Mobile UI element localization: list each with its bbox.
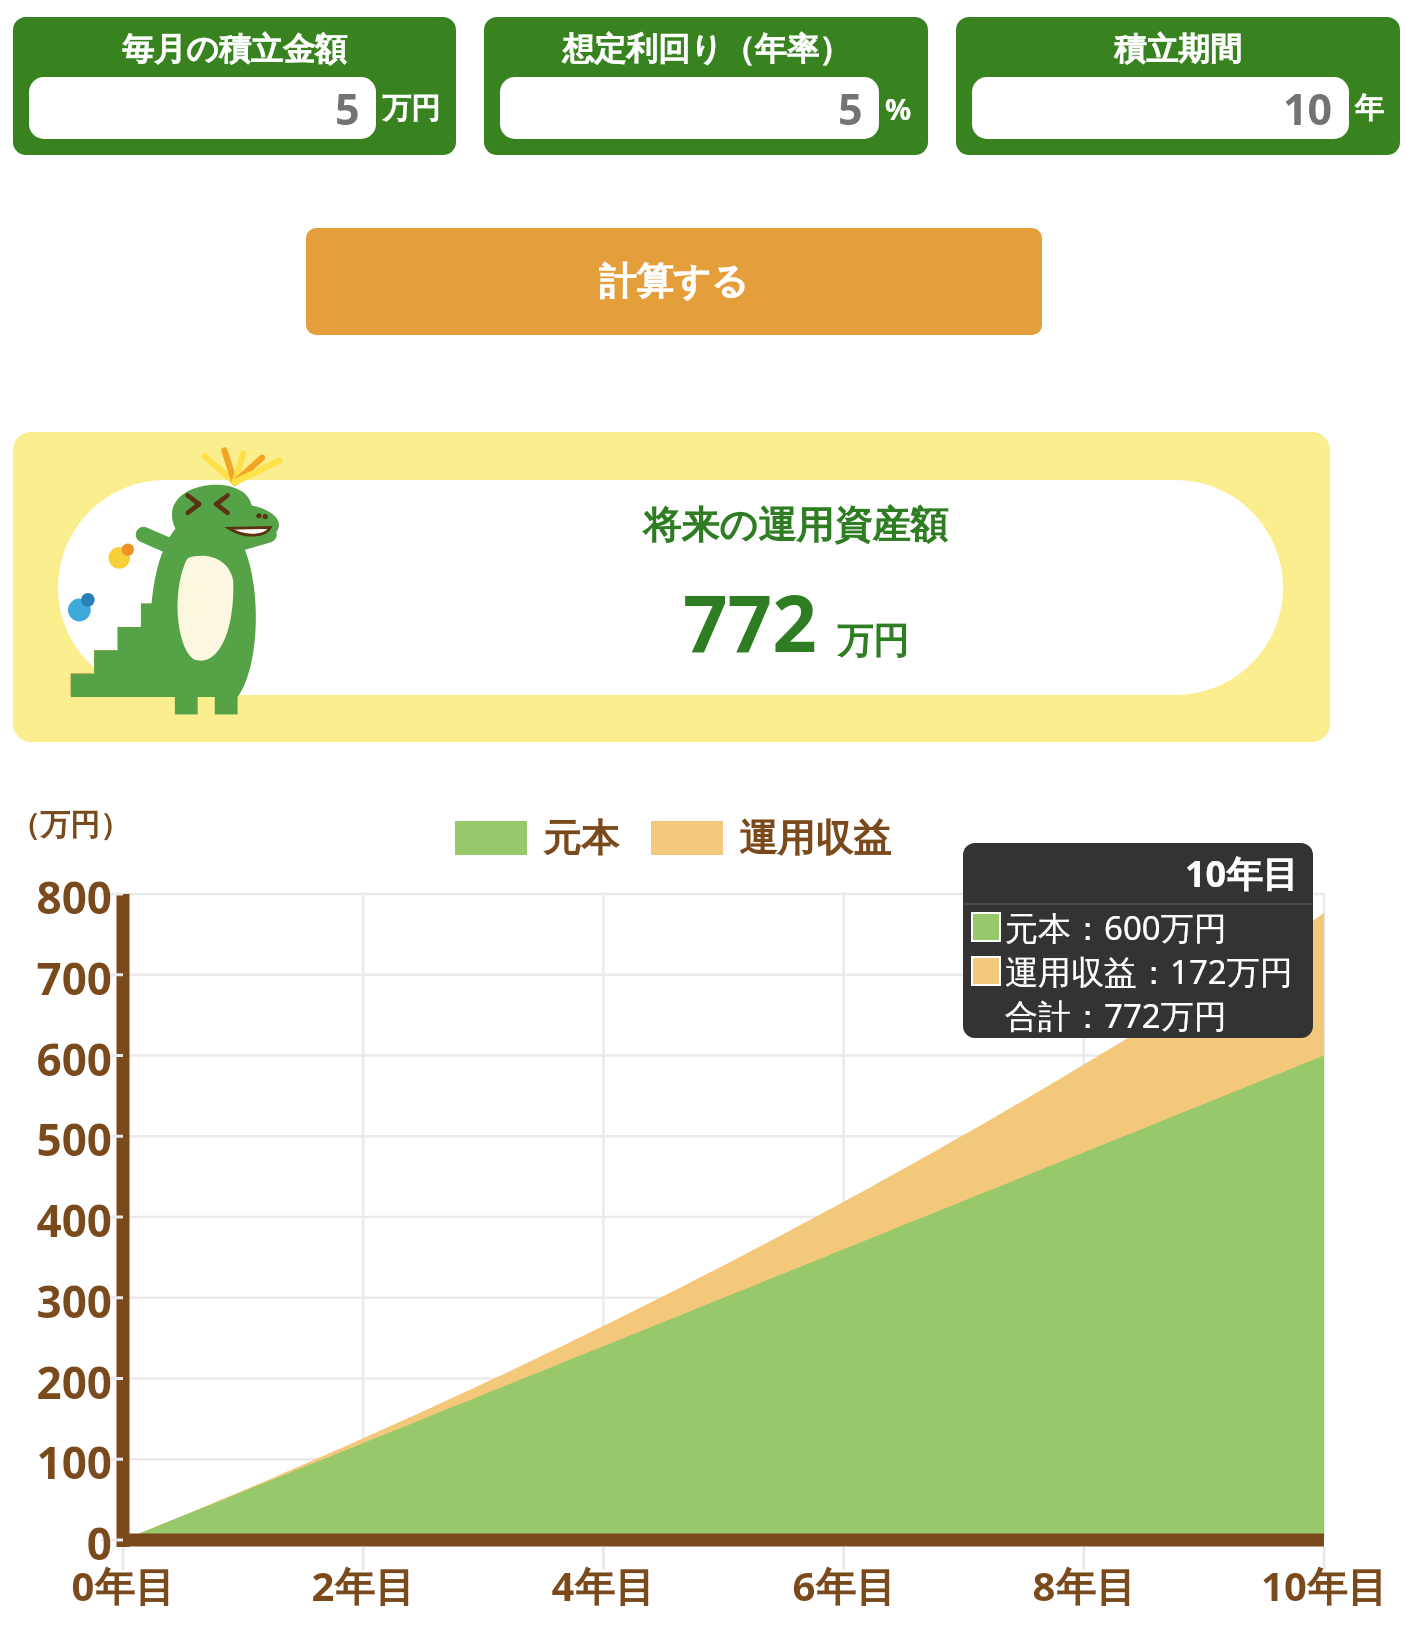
staticText: 500 [0, 1109, 112, 1169]
staticText: 5 [838, 79, 863, 138]
staticText: 積立期間 [1114, 29, 1242, 69]
staticText: 年 [1355, 90, 1384, 127]
button[interactable]: 想定利回り（年率） [484, 17, 928, 155]
staticText: 万円 [837, 618, 909, 663]
button[interactable]: 毎月の積立金額 [13, 17, 456, 155]
other: Mascot illustration [58, 436, 343, 726]
staticText: 8年目 [994, 1558, 1174, 1613]
staticText: 元本：600万円 [1005, 905, 1227, 949]
staticText: 毎月の積立金額 [122, 29, 347, 69]
staticText: 0年目 [33, 1558, 213, 1613]
staticText: （万円） [10, 806, 130, 844]
staticText: 100 [0, 1432, 112, 1492]
staticText: 5 [335, 79, 360, 138]
staticText: 6年目 [754, 1558, 934, 1613]
staticText: 10 [1283, 79, 1333, 138]
staticText: 10年目 [1234, 1558, 1413, 1613]
button[interactable]: 10 [972, 77, 1349, 139]
button[interactable]: 計算する [306, 228, 1042, 335]
staticText: 300 [0, 1271, 112, 1331]
staticText: 合計：772万円 [1005, 993, 1227, 1037]
staticText: 2年目 [273, 1558, 453, 1613]
staticText: 将来の運用資産額 [643, 501, 948, 549]
button[interactable]: 5 [500, 77, 879, 139]
staticText: 772 [683, 569, 817, 675]
staticText: 400 [0, 1190, 112, 1250]
staticText: 700 [0, 948, 112, 1008]
staticText: 運用収益：172万円 [1005, 949, 1293, 993]
staticText: 計算する [599, 258, 749, 305]
staticText: % [885, 89, 912, 128]
staticText: 想定利回り（年率） [562, 29, 851, 69]
staticText: 4年目 [513, 1558, 693, 1613]
button[interactable]: 5 [29, 77, 376, 139]
staticText: 200 [0, 1352, 112, 1412]
staticText: 10年目 [1185, 849, 1299, 898]
staticText: 600 [0, 1029, 112, 1089]
button[interactable]: 積立期間 [956, 17, 1400, 155]
staticText: 元本 [543, 814, 619, 862]
staticText: 0 [0, 1513, 112, 1573]
staticText: 運用収益 [739, 814, 891, 862]
staticText: 万円 [382, 90, 440, 127]
staticText: 800 [0, 867, 112, 927]
